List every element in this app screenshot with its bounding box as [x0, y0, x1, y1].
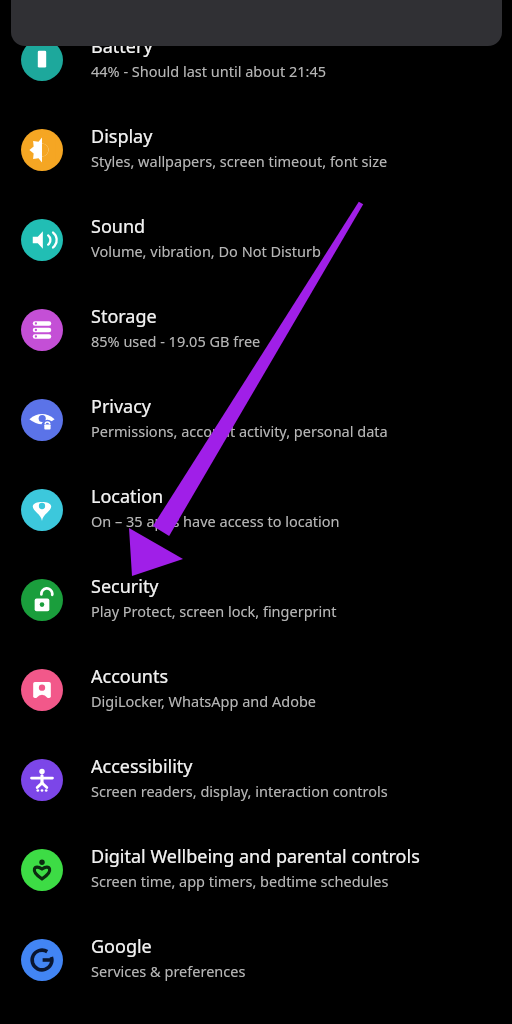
staticText: On – 35 apps have access to location [91, 511, 340, 531]
button[interactable]: Accessibility [0, 736, 512, 824]
staticText: Privacy [91, 394, 152, 419]
button[interactable]: Display [0, 106, 512, 194]
staticText: Battery [91, 34, 153, 59]
staticText: Display [91, 124, 153, 149]
staticText: Permissions, account activity, personal … [91, 421, 388, 441]
staticText: Services & preferences [91, 961, 246, 981]
staticText: Sound [91, 214, 146, 239]
staticText: Accounts [91, 664, 169, 689]
button[interactable]: Security [0, 556, 512, 644]
staticText: 44% - Should last until about 21:45 [91, 61, 327, 81]
staticText: Google [91, 934, 152, 959]
staticText: 85% used - 19.05 GB free [91, 331, 261, 351]
staticText: Screen time, app timers, bedtime schedul… [91, 871, 389, 891]
button[interactable]: Location [0, 466, 512, 554]
staticText: Security [91, 574, 159, 599]
staticText: Accessibility [91, 754, 193, 779]
button[interactable]: Search settings [11, 0, 502, 46]
button[interactable]: Sound [0, 196, 512, 284]
staticText: Play Protect, screen lock, fingerprint [91, 601, 337, 621]
staticText: Volume, vibration, Do Not Disturb [91, 241, 321, 261]
button[interactable]: Storage [0, 286, 512, 374]
button[interactable]: Accounts [0, 646, 512, 734]
staticText: Digital Wellbeing and parental controls [91, 844, 420, 869]
staticText: DigiLocker, WhatsApp and Adobe [91, 691, 317, 711]
staticText: Storage [91, 304, 157, 329]
staticText: Screen readers, display, interaction con… [91, 781, 388, 801]
button[interactable]: Privacy [0, 376, 512, 464]
button[interactable]: Google [0, 916, 512, 1004]
button[interactable]: Digital Wellbeing and parental controls [0, 826, 512, 914]
staticText: Styles, wallpapers, screen timeout, font… [91, 151, 388, 171]
button[interactable]: Battery [0, 16, 512, 104]
staticText: Location [91, 484, 164, 509]
